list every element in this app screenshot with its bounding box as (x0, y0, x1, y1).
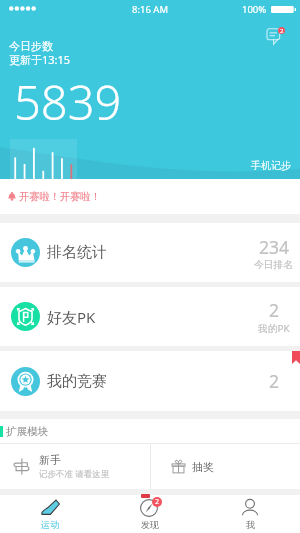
button[interactable]: 抽奖 (151, 444, 300, 489)
staticText: 2 (155, 497, 160, 507)
staticText: 我的竞赛 (47, 372, 107, 391)
button[interactable]: 排名统计 (0, 223, 300, 282)
staticText: 记步不准 请看这里 (39, 468, 110, 480)
staticText: 扩展模块 (6, 425, 48, 438)
staticText: 手机记步 (251, 159, 291, 172)
staticText: 2 (269, 298, 280, 322)
staticText: 更新于13:15 (9, 52, 71, 67)
staticText: 234 (259, 235, 290, 259)
staticText: 抽奖 (192, 460, 214, 474)
button[interactable]: 我的竞赛 (0, 351, 300, 411)
button[interactable]: 2 (100, 495, 200, 533)
staticText: 2 (280, 27, 284, 34)
button[interactable]: Messages (265, 25, 287, 46)
staticText: 开赛啦！开赛啦！ (19, 190, 101, 203)
staticText: 100% (242, 3, 267, 16)
button[interactable]: 开赛啦！开赛啦！ (0, 179, 300, 214)
staticText: 我 (246, 519, 255, 530)
staticText: 今日步数 (9, 39, 53, 53)
staticText: 我的PK (258, 322, 290, 335)
button[interactable]: 新手 (0, 444, 150, 489)
staticText: 好友PK (47, 307, 96, 327)
button[interactable]: 我 (200, 495, 300, 533)
staticText: 新手 (39, 453, 61, 467)
staticText: 运动 (41, 519, 59, 530)
staticText: 今日排名 (254, 259, 294, 271)
staticText: 排名统计 (47, 243, 107, 262)
staticText: 5839 (14, 70, 122, 134)
button[interactable]: 运动 (0, 495, 100, 533)
button[interactable]: 好友PK (0, 287, 300, 346)
staticText: 发现 (141, 519, 159, 530)
staticText: 2 (269, 369, 280, 393)
staticText: 8:16 AM (132, 3, 169, 16)
